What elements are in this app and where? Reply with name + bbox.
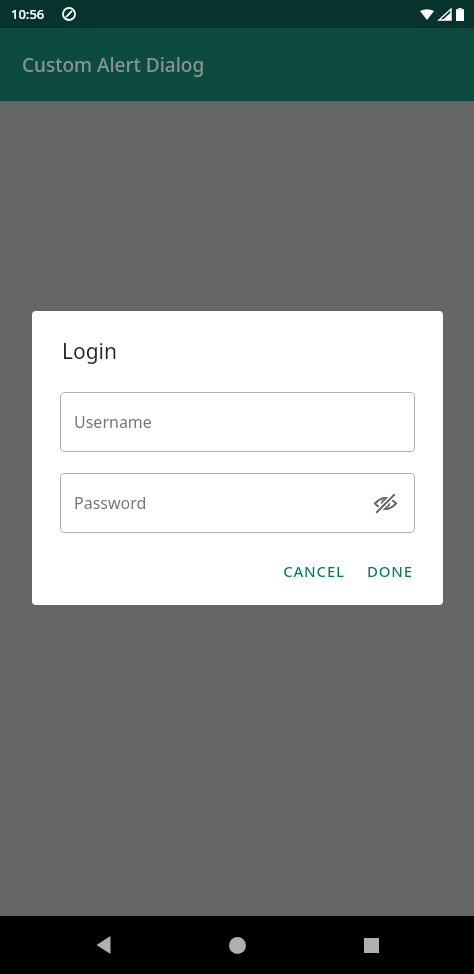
staticText: Login bbox=[62, 337, 118, 366]
button[interactable]: Home bbox=[207, 916, 267, 974]
staticText: 10:56 bbox=[11, 5, 45, 23]
button[interactable]: Recent apps bbox=[341, 916, 401, 974]
button[interactable]: Back bbox=[74, 916, 134, 974]
button[interactable]: Toggle password visibility bbox=[369, 487, 401, 519]
staticText: DONE bbox=[367, 561, 413, 581]
button[interactable]: CANCEL bbox=[275, 555, 353, 587]
staticText: Custom Alert Dialog bbox=[22, 52, 205, 78]
staticText: Username bbox=[74, 411, 152, 433]
staticText: Password bbox=[74, 492, 147, 514]
button[interactable]: Password bbox=[60, 473, 415, 533]
button[interactable]: DONE bbox=[359, 555, 421, 587]
button[interactable]: Username bbox=[60, 392, 415, 452]
staticText: CANCEL bbox=[283, 561, 345, 581]
